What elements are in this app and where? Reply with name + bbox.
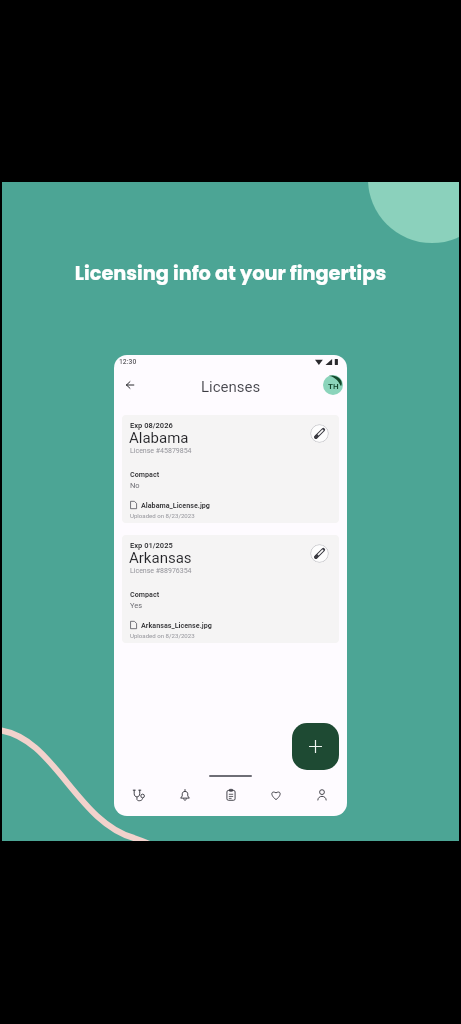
- staticText: No: [130, 481, 140, 490]
- staticText: Yes: [130, 601, 143, 610]
- button[interactable]: Stethoscope: [127, 783, 151, 807]
- staticText: Exp 01/2025: [130, 541, 173, 550]
- button[interactable]: Licenses: [219, 783, 243, 807]
- button[interactable]: Edit: [310, 424, 329, 443]
- button[interactable]: Edit: [310, 544, 329, 563]
- button[interactable]: Back: [120, 375, 140, 395]
- button[interactable]: Add license: [292, 723, 339, 770]
- staticText: Compact: [130, 470, 160, 478]
- button[interactable]: Profile: [310, 783, 334, 807]
- staticText: Licenses: [201, 378, 261, 396]
- button[interactable]: Favorites: [264, 783, 288, 807]
- button[interactable]: Notifications: [173, 783, 197, 807]
- staticText: Arkansas_License.jpg: [141, 621, 212, 629]
- staticText: License #88976354: [130, 567, 192, 575]
- staticText: 12:30: [119, 358, 137, 366]
- staticText: TH: [328, 382, 339, 391]
- staticText: Uploaded on 8/23/2023: [130, 512, 195, 519]
- button[interactable]: Profile: [323, 375, 343, 395]
- staticText: Licensing info at your fingertips: [2, 260, 459, 287]
- staticText: Arkansas: [129, 549, 192, 567]
- staticText: Alabama_License.jpg: [141, 501, 210, 509]
- staticText: Alabama: [129, 429, 189, 447]
- staticText: Uploaded on 8/23/2023: [130, 632, 195, 639]
- staticText: Exp 08/2026: [130, 421, 173, 430]
- staticText: Compact: [130, 590, 160, 598]
- staticText: License #45879854: [130, 447, 192, 455]
